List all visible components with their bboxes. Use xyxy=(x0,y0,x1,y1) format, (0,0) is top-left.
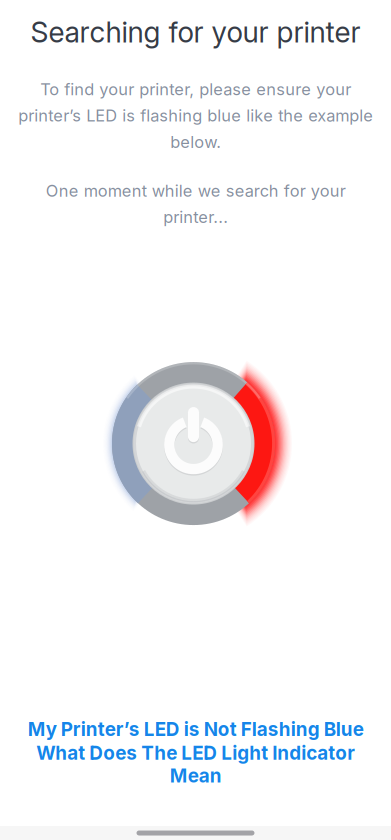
staticText: What Does The LED Light Indicator Mean xyxy=(36,741,355,787)
staticText: One moment while we search for your prin… xyxy=(45,181,345,227)
staticText: To find your printer, please ensure your… xyxy=(18,79,373,152)
staticText: Searching for your printer xyxy=(30,15,360,49)
button[interactable]: My Printer’s LED is Not Flashing Blue xyxy=(23,718,368,740)
button[interactable]: What Does The LED Light Indicator Mean xyxy=(33,741,358,787)
staticText: My Printer’s LED is Not Flashing Blue xyxy=(27,718,363,740)
